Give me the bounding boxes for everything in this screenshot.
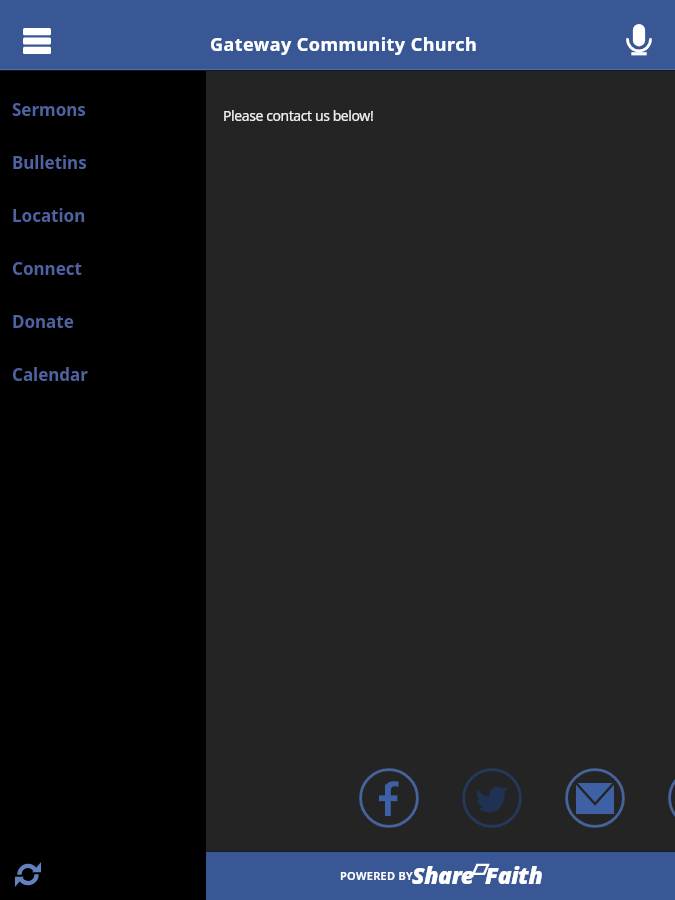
button[interactable]: More (668, 768, 675, 828)
button[interactable]: Bulletins (0, 136, 206, 189)
staticText: Share (412, 859, 474, 890)
button[interactable]: Donate (0, 295, 206, 348)
button[interactable]: Sermons (0, 83, 206, 136)
button[interactable]: Twitter (462, 768, 522, 828)
staticText: Connect (12, 257, 82, 280)
button[interactable]: Connect (0, 242, 206, 295)
button[interactable]: Facebook (359, 768, 419, 828)
button[interactable]: Location (0, 189, 206, 242)
staticText: POWERED BY (340, 868, 413, 883)
staticText: Faith (485, 859, 543, 890)
staticText: Location (12, 204, 86, 227)
button[interactable]: Calendar (0, 348, 206, 401)
button[interactable]: Email (565, 768, 625, 828)
staticText: Sermons (12, 98, 86, 121)
staticText: Please contact us below! (223, 106, 374, 125)
button[interactable]: Refresh (13, 859, 43, 889)
staticText: Gateway Community Church (210, 32, 478, 57)
button[interactable]: Open navigation menu (9, 13, 65, 69)
staticText: Donate (12, 310, 74, 333)
staticText: Bulletins (12, 151, 87, 174)
button[interactable]: Voice search (615, 16, 663, 64)
staticText: Calendar (12, 363, 88, 386)
